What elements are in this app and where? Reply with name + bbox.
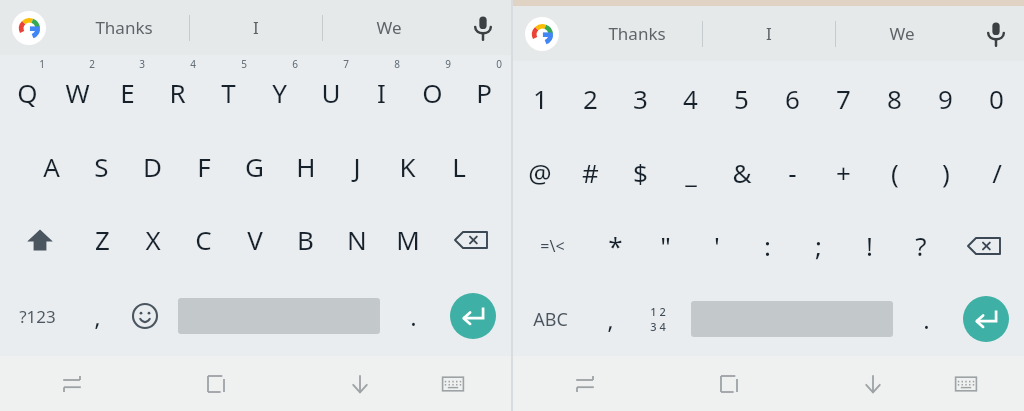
button[interactable]: C [178,203,229,276]
button[interactable]: F [178,130,229,203]
button[interactable]: ABC [515,282,586,356]
button[interactable]: 5 [716,61,767,136]
button[interactable]: 3 [615,61,665,136]
button[interactable]: P [458,55,509,130]
button[interactable]: . [389,276,437,356]
staticText: 3 [633,81,648,116]
button[interactable]: L [433,130,484,203]
button[interactable]: A [26,130,76,203]
button[interactable]: W [52,55,102,130]
button[interactable]: 0 [971,61,1022,136]
button[interactable]: # [565,136,615,209]
button[interactable]: Shift [2,203,77,276]
button[interactable]: T [203,55,254,130]
button[interactable]: ) [920,136,971,209]
button[interactable]: " [640,209,691,282]
staticText: 3 4 [650,319,666,334]
button[interactable]: S [76,130,127,203]
button[interactable]: G [229,130,280,203]
button[interactable]: Voice input [968,6,1024,61]
button[interactable]: X [127,203,178,276]
button[interactable]: Backspace [433,203,509,276]
staticText: 1 [533,81,548,116]
button[interactable]: 1 [515,61,565,136]
button[interactable]: Voice input [455,0,511,55]
button[interactable]: Recents [181,356,250,411]
button[interactable]: Hide keyboard [838,356,907,411]
button[interactable]: , [73,276,121,356]
button[interactable]: I [703,6,835,61]
button[interactable]: Backspace [946,209,1022,282]
button[interactable]: =\< [515,209,590,282]
button[interactable]: We [836,6,968,61]
button[interactable]: U [305,55,356,130]
button[interactable]: Recents [694,356,763,411]
button[interactable]: H [280,130,331,203]
button[interactable]: Google [0,0,58,55]
button[interactable]: N [331,203,382,276]
button[interactable]: Enter [437,276,509,356]
staticText: / [992,155,1002,190]
button[interactable]: ( [869,136,920,209]
button[interactable]: Y [254,55,305,130]
button[interactable]: R [152,55,203,130]
staticText: Thanks [608,22,666,45]
staticText: 1 [39,57,45,71]
button[interactable]: ! [844,209,895,282]
button[interactable]: E [102,55,152,130]
button[interactable]: Q [2,55,52,130]
staticText: F [197,149,211,184]
button[interactable]: Enter [950,282,1022,356]
button[interactable]: Hide keyboard [325,356,394,411]
staticText: 1 2 [650,304,666,319]
button[interactable]: . [902,282,950,356]
button[interactable]: 7 [818,61,869,136]
button[interactable]: V [229,203,280,276]
button[interactable]: ' [691,209,742,282]
button[interactable]: 9 [920,61,971,136]
button[interactable]: @ [515,136,565,209]
button[interactable]: Switch input method [37,356,106,411]
button[interactable]: Z [77,203,127,276]
button[interactable]: Thanks [571,6,702,61]
staticText: W [65,75,90,110]
button[interactable]: B [280,203,331,276]
button[interactable]: & [716,136,767,209]
button[interactable]: $ [615,136,665,209]
staticText: A [43,149,60,184]
button[interactable]: Space [682,282,902,356]
button[interactable]: ?123 [2,276,73,356]
button[interactable]: I [190,0,322,55]
button[interactable]: * [590,209,640,282]
button[interactable]: M [382,203,433,276]
button[interactable]: O [407,55,458,130]
button[interactable]: ; [793,209,844,282]
staticText: C [195,222,212,257]
button[interactable]: We [323,0,455,55]
button[interactable]: ? [895,209,946,282]
button[interactable]: 4 [665,61,716,136]
staticText: K [399,149,416,184]
button[interactable]: Switch input method [550,356,619,411]
button[interactable]: D [127,130,178,203]
button[interactable]: , [586,282,634,356]
button[interactable]: _ [665,136,716,209]
button[interactable]: 8 [869,61,920,136]
button[interactable]: Emoji [121,276,169,356]
button[interactable]: Thanks [58,0,189,55]
button[interactable]: Google [513,6,571,61]
staticText: Q [17,75,38,110]
button[interactable]: / [971,136,1022,209]
button[interactable]: I [356,55,407,130]
button[interactable]: J [331,130,382,203]
staticText: I [377,75,386,110]
button[interactable]: 2 [565,61,615,136]
button[interactable]: - [767,136,818,209]
button[interactable]: + [818,136,869,209]
button[interactable]: 6 [767,61,818,136]
button[interactable]: K [382,130,433,203]
button[interactable]: Keyboard settings [418,356,487,411]
button[interactable]: Space [169,276,389,356]
button[interactable]: : [742,209,793,282]
button[interactable]: Keyboard settings [931,356,1000,411]
